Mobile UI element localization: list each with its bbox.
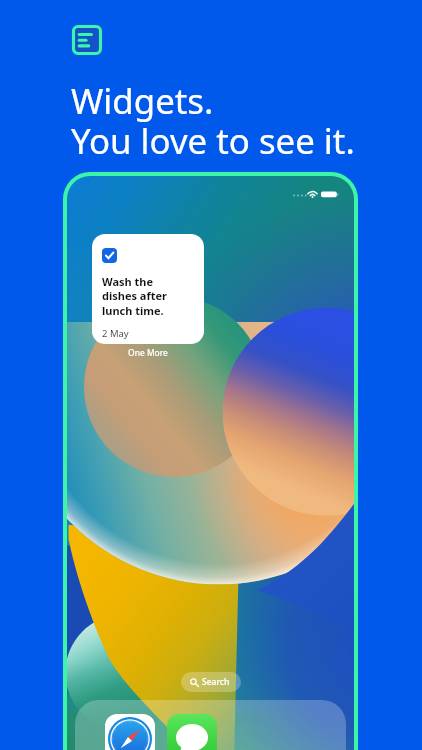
button[interactable]: Search	[181, 672, 241, 692]
staticText: Search	[202, 676, 230, 688]
staticText: Widgets. You love to see it.	[71, 77, 355, 164]
staticText: 2 May	[102, 327, 129, 340]
button[interactable]: Safari	[105, 714, 155, 750]
staticText: Wash the dishes after lunch time.	[102, 274, 167, 319]
button[interactable]: Wash the dishes after lunch time.	[92, 234, 204, 344]
button[interactable]: Messages	[167, 714, 217, 750]
button[interactable]: App logo	[68, 21, 106, 59]
staticText: One More	[128, 347, 168, 359]
